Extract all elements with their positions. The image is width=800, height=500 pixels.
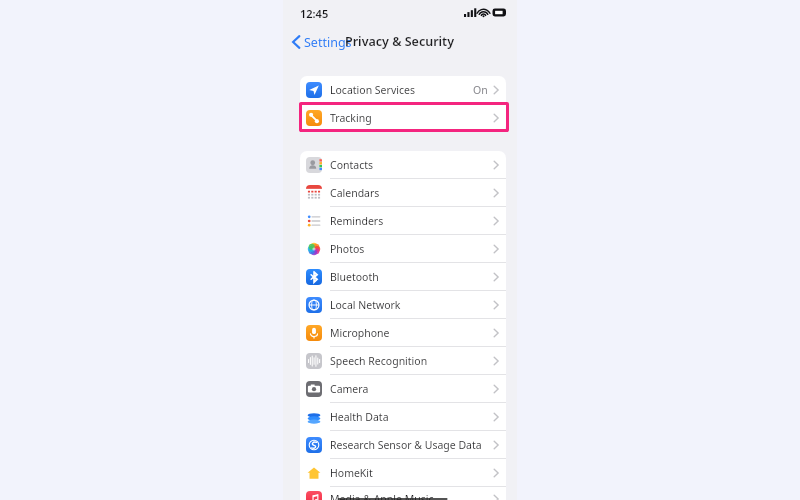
staticText: Bluetooth (330, 270, 379, 284)
staticText: Contacts (330, 158, 374, 172)
other: Tracking (306, 110, 322, 126)
staticText: Settings (304, 34, 352, 51)
staticText: 12:45 (300, 6, 329, 21)
other: Calendars (306, 185, 322, 201)
button[interactable]: Calendars (300, 179, 506, 207)
button[interactable]: Health Data (300, 403, 506, 431)
other: HomeKit (306, 465, 322, 481)
other: Camera (306, 381, 322, 397)
other: Photos (306, 241, 322, 257)
other: Health Data (306, 409, 322, 425)
staticText: Tracking (330, 111, 372, 125)
staticText: Speech Recognition (330, 354, 428, 368)
button[interactable]: Local Network (300, 291, 506, 319)
staticText: HomeKit (330, 466, 373, 480)
button[interactable]: Contacts (300, 151, 506, 179)
other: Bluetooth (306, 269, 322, 285)
button[interactable]: Reminders (300, 207, 506, 235)
other: Location Services (306, 82, 322, 98)
staticText: Photos (330, 242, 365, 256)
staticText: Health Data (330, 410, 389, 424)
staticText: Local Network (330, 298, 401, 312)
button[interactable]: HomeKit (300, 459, 506, 487)
staticText: Media & Apple Music (330, 492, 434, 500)
staticText: Reminders (330, 214, 384, 228)
staticText: Research Sensor & Usage Data (330, 438, 482, 452)
other: Microphone (306, 325, 322, 341)
other: Local Network (306, 297, 322, 313)
button[interactable]: Settings (289, 30, 355, 54)
staticText: On (473, 83, 488, 97)
other: Speech Recognition (306, 353, 322, 369)
button[interactable]: Microphone (300, 319, 506, 347)
button[interactable]: Media & Apple Music (300, 487, 506, 500)
other: Reminders (306, 213, 322, 229)
button[interactable]: Camera (300, 375, 506, 403)
staticText: Microphone (330, 326, 390, 340)
button[interactable]: Research Sensor & Usage Data (300, 431, 506, 459)
other: Contacts (306, 157, 322, 173)
other: Media & Apple Music (306, 491, 322, 500)
button[interactable]: Bluetooth (300, 263, 506, 291)
staticText: Camera (330, 382, 369, 396)
button[interactable]: Photos (300, 235, 506, 263)
staticText: Calendars (330, 186, 380, 200)
staticText: Privacy & Security (345, 33, 455, 50)
other: Research Sensor & Usage Data (306, 437, 322, 453)
button[interactable]: Speech Recognition (300, 347, 506, 375)
button[interactable]: Location Services (300, 76, 506, 104)
staticText: Location Services (330, 83, 415, 97)
button[interactable]: Tracking (300, 104, 506, 132)
